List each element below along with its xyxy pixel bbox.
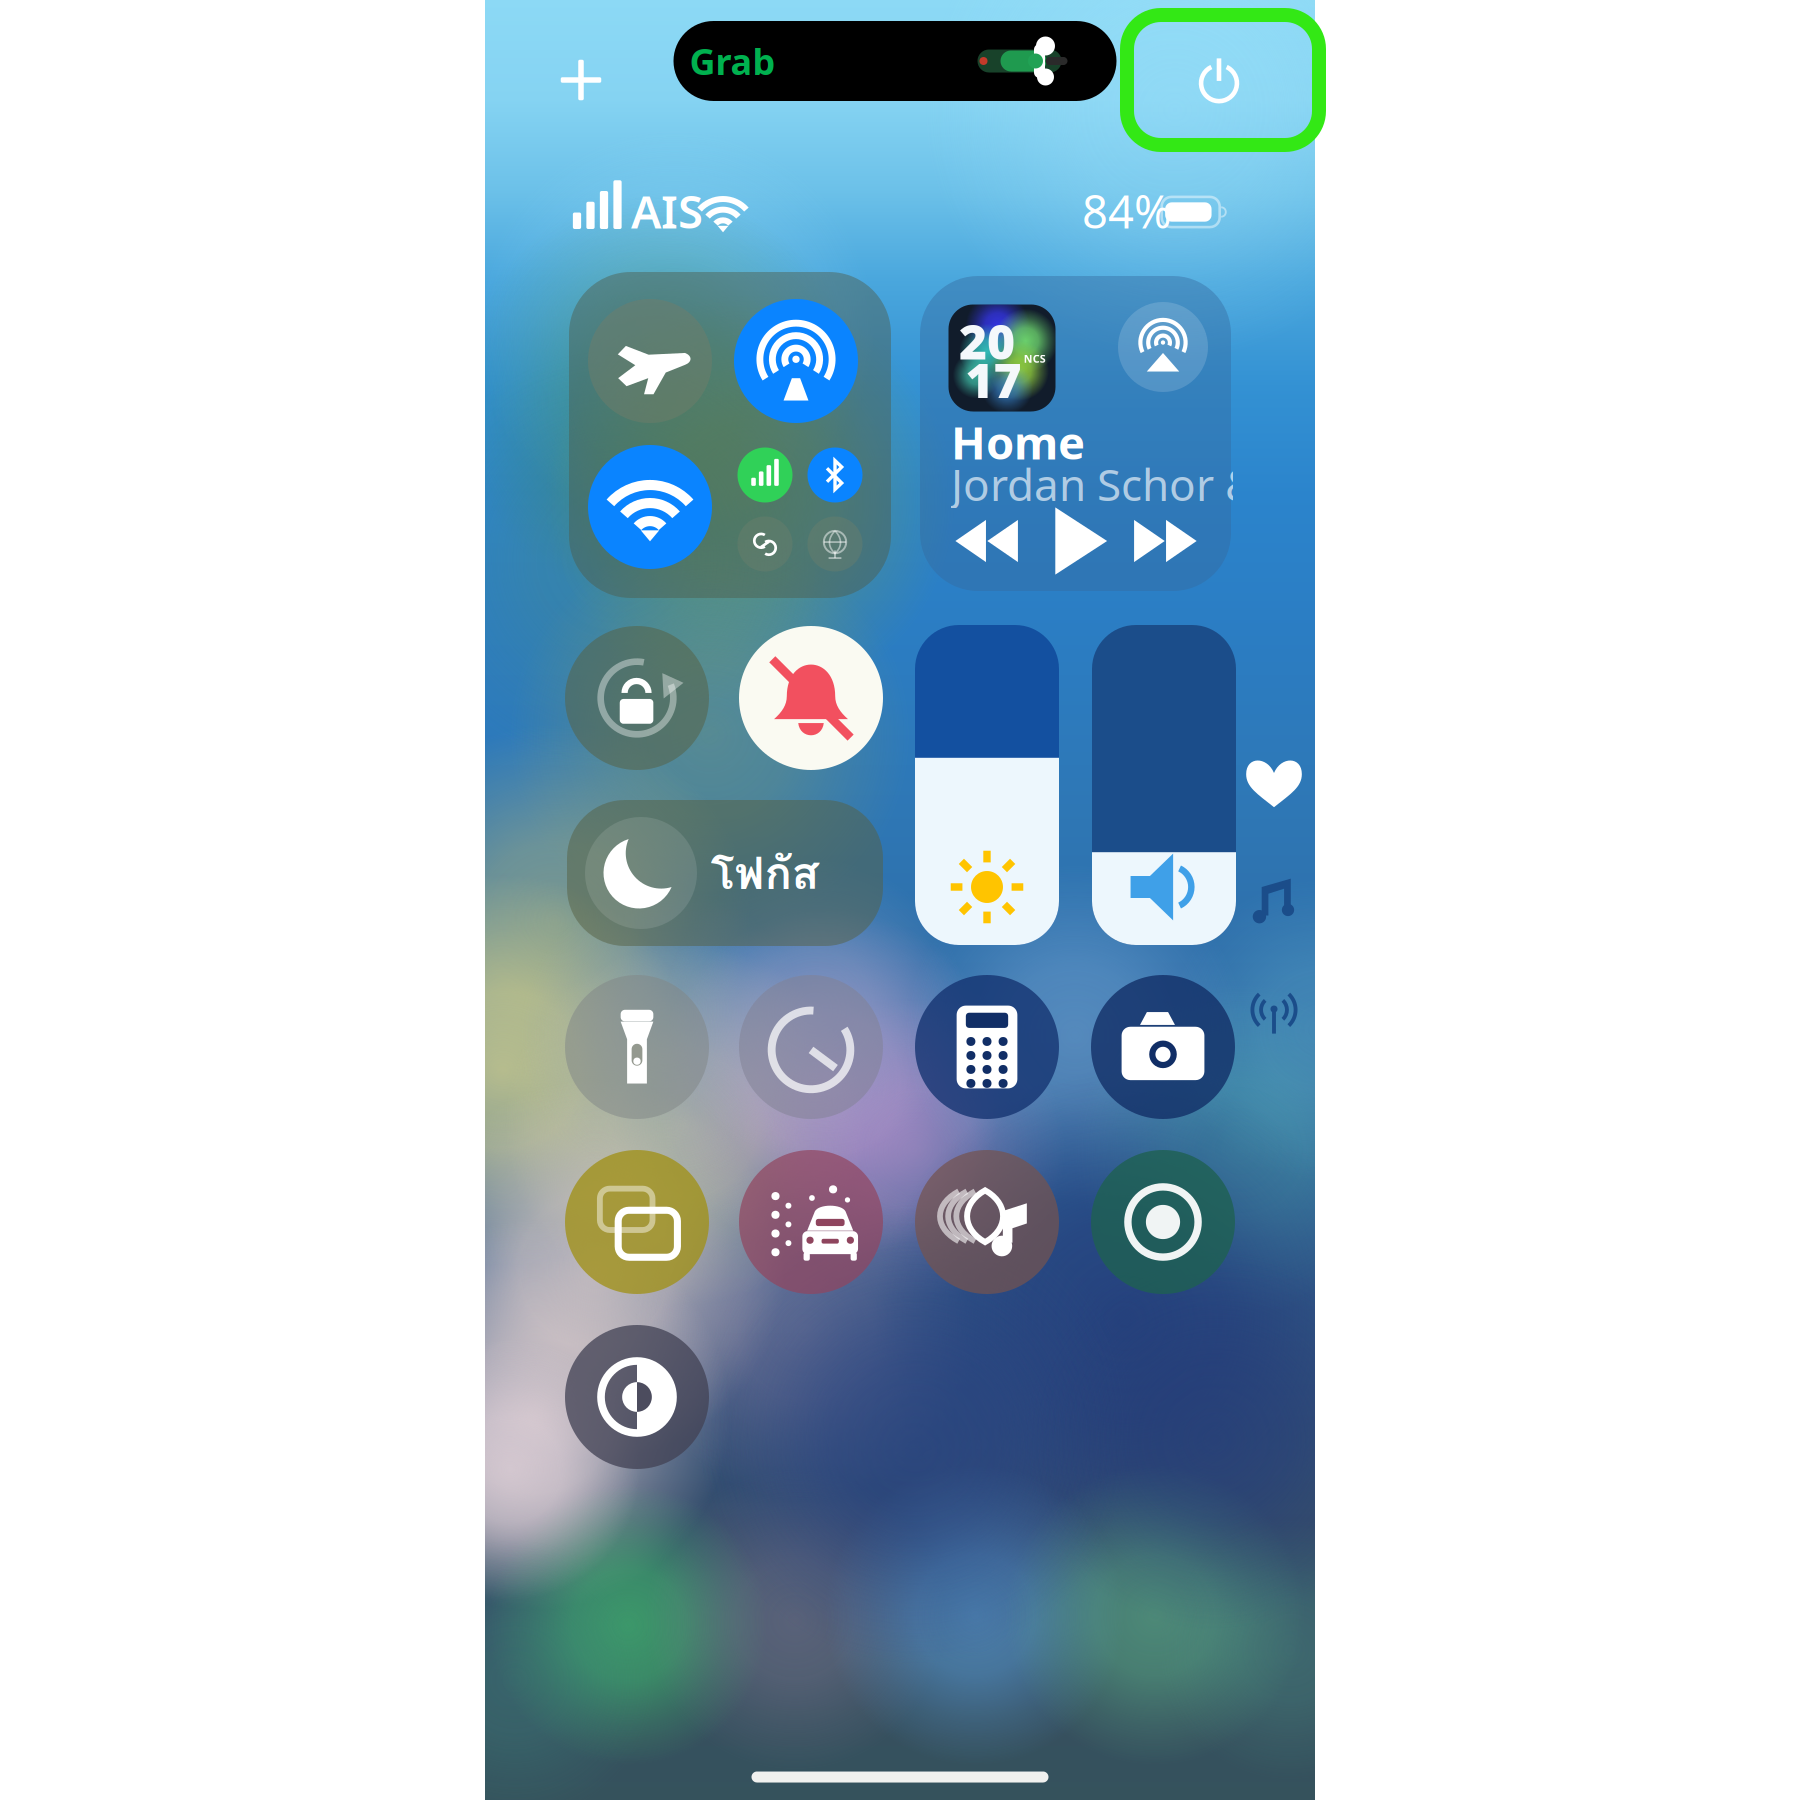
button[interactable]: Airplane Mode [588, 299, 712, 423]
button[interactable]: AirDrop [734, 299, 858, 423]
button[interactable]: Previous track [941, 496, 1035, 586]
button[interactable]: Calculator [915, 975, 1059, 1119]
button[interactable]: Silent Mode [739, 626, 883, 770]
button[interactable]: Dark Mode [565, 1325, 709, 1469]
button[interactable]: Timer [739, 975, 883, 1119]
button[interactable]: Rotation Lock [565, 626, 709, 770]
button[interactable]: Personal Hotspot [737, 516, 792, 571]
staticText: 84% [1082, 181, 1172, 241]
button[interactable]: Camera [1091, 975, 1235, 1119]
button[interactable]: Grab live activity [673, 21, 1116, 101]
staticText: 17 [965, 347, 1021, 411]
staticText: Home [951, 412, 1085, 472]
button[interactable]: Add controls [535, 34, 627, 126]
button[interactable]: VPN [807, 516, 862, 571]
button[interactable]: Screen Recording [1091, 1150, 1235, 1294]
staticText: Grab [689, 37, 775, 85]
button[interactable]: Music [1238, 865, 1310, 937]
button[interactable]: Driving Focus [739, 1150, 883, 1294]
button[interactable]: Cellular Data [737, 447, 792, 502]
button[interactable]: Volume [1092, 625, 1236, 945]
staticText: 20 [959, 309, 1015, 373]
button[interactable]: Power off [1169, 30, 1269, 130]
button[interactable]: Play [1030, 496, 1124, 586]
button[interactable]: AirPlay [1118, 302, 1208, 392]
button[interactable]: Bluetooth [807, 447, 862, 502]
button[interactable]: Cellular [1238, 976, 1310, 1048]
button[interactable]: Screen Mirroring [565, 1150, 709, 1294]
button[interactable]: Wi-Fi [588, 445, 712, 569]
button[interactable]: Brightness [915, 625, 1059, 945]
button[interactable]: Shazam [915, 1150, 1059, 1294]
staticText: AIS [631, 181, 703, 241]
button[interactable]: Favourite [1238, 748, 1310, 820]
staticText: NCS [1024, 351, 1046, 366]
button[interactable]: Focus [567, 800, 883, 946]
button[interactable]: Next track [1117, 496, 1211, 586]
staticText: Jordan Schor & H [951, 455, 1301, 513]
button[interactable]: Flashlight [565, 975, 709, 1119]
staticText: โฟกัส [710, 838, 819, 908]
